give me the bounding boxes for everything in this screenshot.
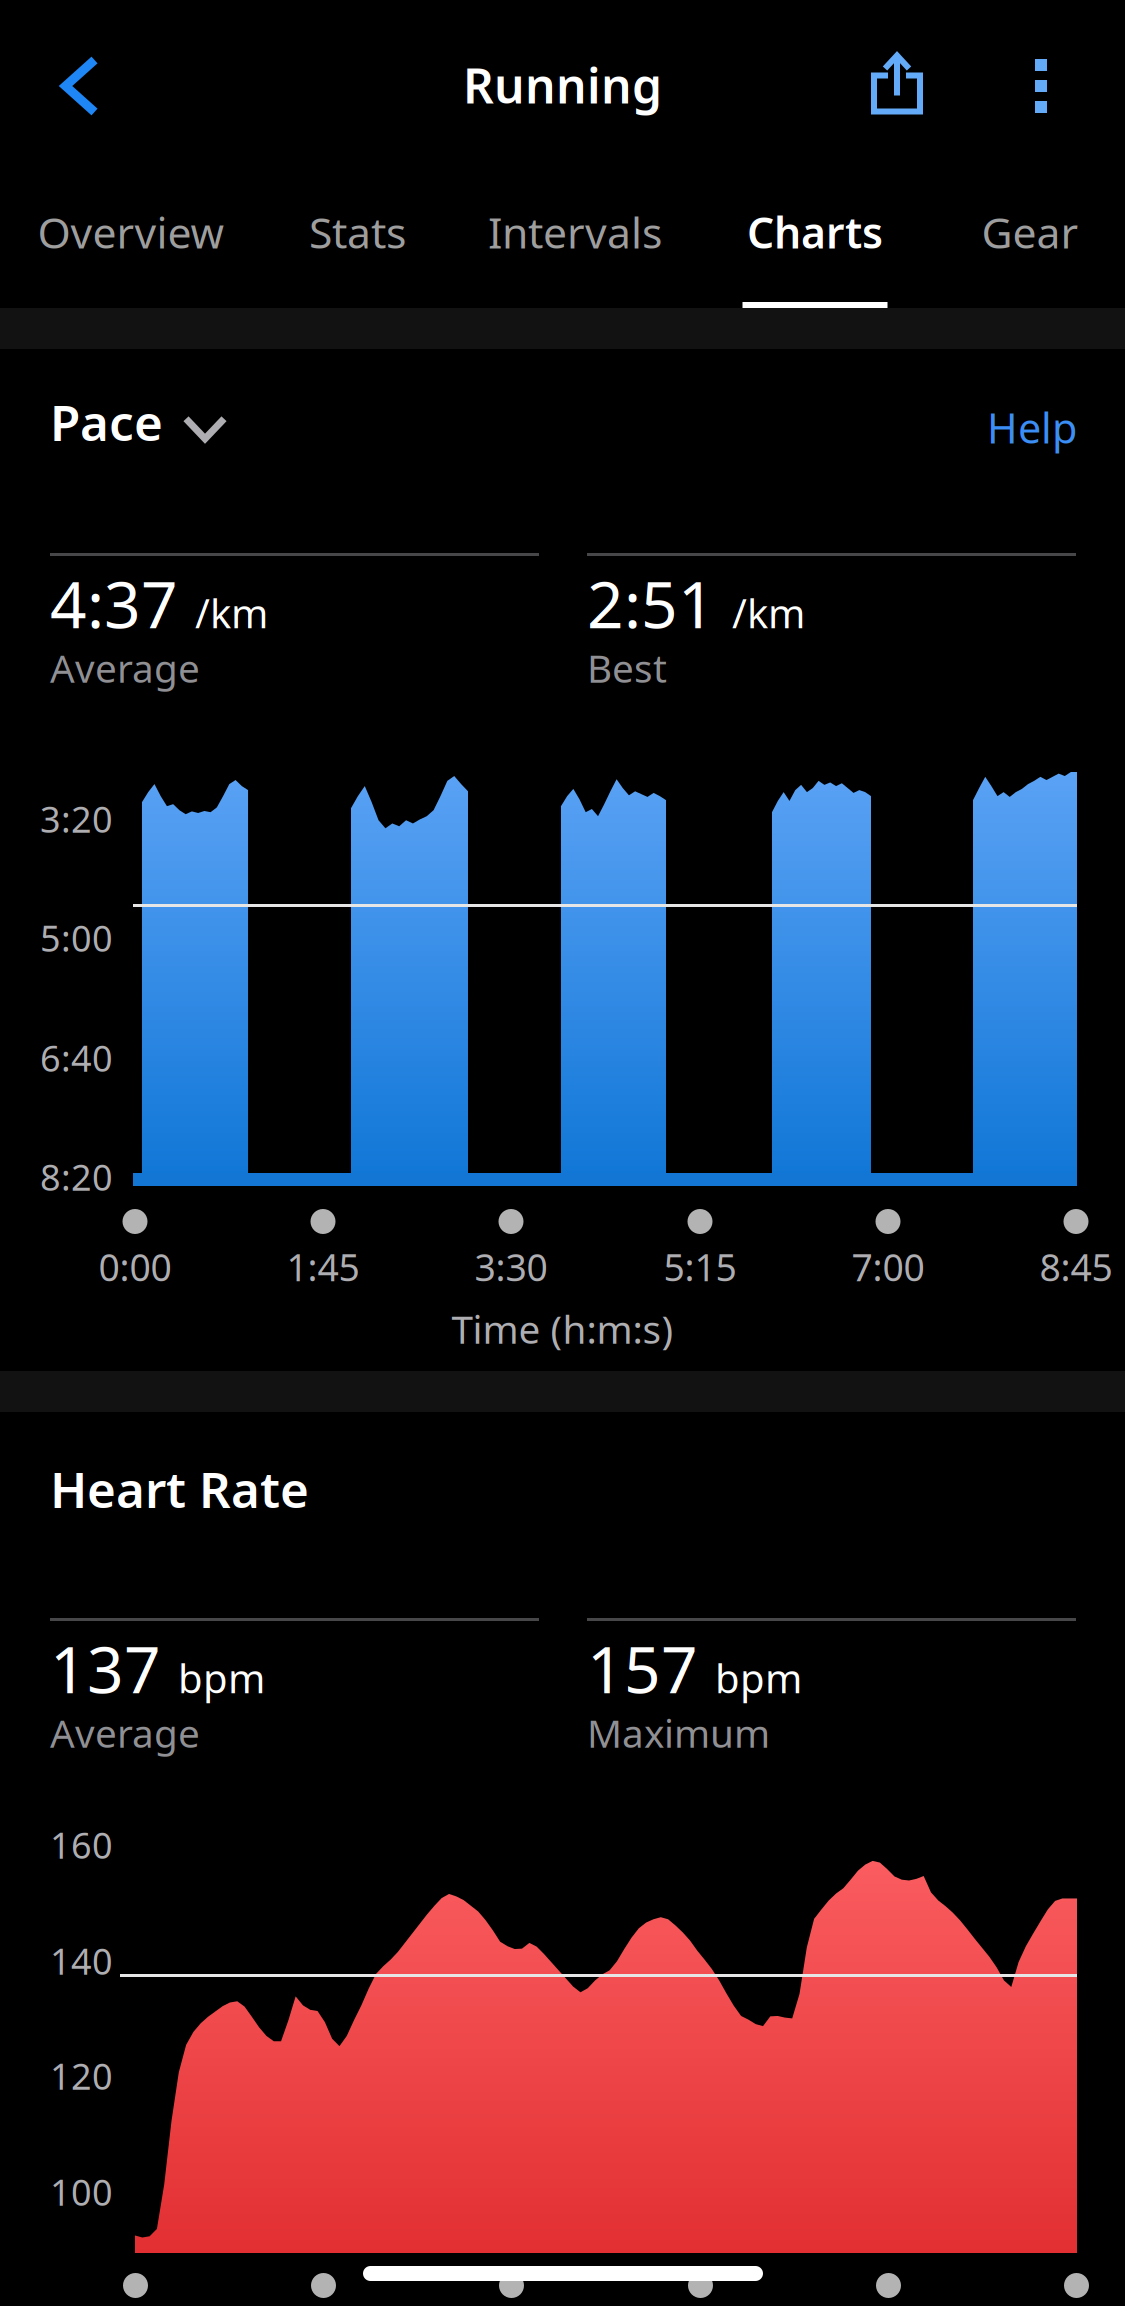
staticText: 120: [50, 2052, 113, 2100]
staticText: Average: [50, 1707, 200, 1758]
staticText: 1:45: [286, 1242, 359, 1292]
staticText: Charts: [747, 204, 883, 260]
staticText: 8:45: [1039, 1242, 1112, 1292]
staticText: 0:00: [98, 1242, 171, 1292]
button[interactable]: Pace: [50, 389, 224, 454]
staticText: 8:20: [40, 1153, 113, 1201]
button[interactable]: Share: [827, 0, 967, 168]
button[interactable]: More options: [986, 1, 1096, 171]
staticText: 5:00: [40, 914, 113, 962]
staticText: 100: [50, 2168, 113, 2216]
staticText: 140: [50, 1937, 113, 1985]
button[interactable]: Charts: [723, 170, 907, 309]
staticText: Gear: [981, 204, 1078, 260]
staticText: Intervals: [488, 204, 662, 260]
button[interactable]: Overview: [14, 170, 248, 309]
staticText: Average: [50, 642, 200, 693]
staticText: /km: [195, 586, 268, 639]
staticText: bpm: [178, 1651, 265, 1704]
staticText: 137: [50, 1626, 161, 1711]
button[interactable]: Back: [5, 0, 155, 172]
button[interactable]: Gear: [955, 170, 1105, 309]
staticText: Stats: [309, 204, 406, 260]
staticText: bpm: [715, 1651, 802, 1704]
staticText: Overview: [37, 204, 224, 260]
staticText: 6:40: [40, 1034, 113, 1082]
staticText: 3:30: [474, 1242, 547, 1292]
staticText: Pace: [50, 389, 163, 454]
staticText: Best: [587, 642, 667, 693]
button[interactable]: Help: [957, 400, 1077, 455]
staticText: 160: [50, 1821, 113, 1869]
staticText: 4:37: [50, 561, 178, 646]
staticText: Running: [463, 53, 662, 117]
staticText: Help: [987, 400, 1077, 455]
button[interactable]: Intervals: [459, 170, 691, 309]
button[interactable]: Stats: [280, 170, 435, 309]
staticText: 3:20: [40, 795, 113, 843]
staticText: 2:51: [587, 561, 715, 646]
staticText: 157: [587, 1626, 698, 1711]
staticText: Maximum: [587, 1707, 770, 1758]
staticText: Time (h:m:s): [451, 1303, 673, 1354]
staticText: /km: [732, 586, 805, 639]
staticText: 7:00: [851, 1242, 924, 1292]
staticText: 5:15: [663, 1242, 736, 1292]
staticText: Heart Rate: [50, 1456, 309, 1521]
